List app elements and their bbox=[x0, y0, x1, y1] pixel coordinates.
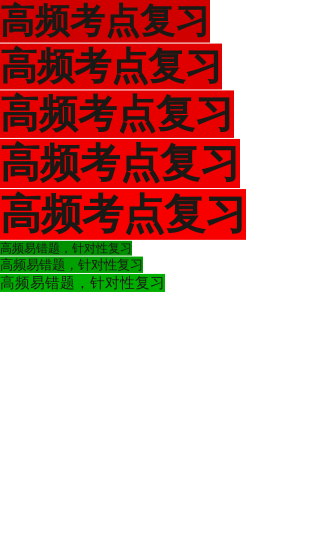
staticText: 高频考点复习 bbox=[0, 44, 222, 89]
staticText: 高频考点复习 bbox=[0, 139, 240, 188]
staticText: 高频考点复习 bbox=[0, 189, 246, 240]
staticText: 高频易错题，针对性复习 bbox=[0, 274, 165, 292]
staticText: 高频易错题，针对性复习 bbox=[0, 257, 143, 273]
staticText: 高频易错题，针对性复习 bbox=[0, 241, 132, 255]
staticText: 高频考点复习 bbox=[0, 90, 234, 138]
staticText: 高频考点复习 bbox=[0, 0, 210, 43]
